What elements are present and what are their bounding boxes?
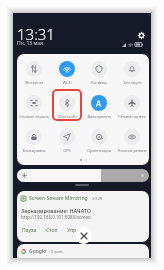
staticText: Пн, 13 мая bbox=[17, 40, 43, 47]
staticText: Пауза bbox=[22, 227, 37, 234]
button[interactable]: Режим полёта bbox=[117, 95, 147, 119]
staticText: Снимок экрана bbox=[19, 114, 49, 119]
staticText: Зеркалирование: НАЧАТО bbox=[21, 207, 92, 214]
button[interactable]: Bluetooth bbox=[52, 95, 82, 119]
staticText: 13:31 bbox=[17, 24, 55, 44]
button[interactable]: Снимок экрана bbox=[19, 95, 49, 119]
staticText: Интернет bbox=[25, 80, 44, 85]
button[interactable]: Wi-Fi bbox=[52, 61, 82, 85]
button[interactable]: Блокировка bbox=[19, 129, 49, 153]
staticText: http://192.168.0.101:8080/screen bbox=[21, 214, 91, 220]
button[interactable]: A bbox=[84, 95, 114, 119]
staticText: · 3 мин. bbox=[49, 249, 64, 254]
button[interactable]: Settings bbox=[137, 31, 146, 40]
button[interactable]: Конфид. bbox=[84, 61, 114, 85]
button[interactable]: GPS bbox=[52, 129, 82, 153]
staticText: GPS bbox=[63, 148, 71, 153]
staticText: Блокировка bbox=[22, 148, 46, 153]
button[interactable] bbox=[17, 169, 149, 182]
staticText: Google bbox=[29, 248, 47, 255]
button[interactable]: Упр. bbox=[65, 226, 80, 235]
staticText: A bbox=[96, 98, 102, 109]
staticText: Упр. bbox=[67, 227, 78, 234]
staticText: Стоп bbox=[46, 227, 58, 234]
button[interactable]: Google bbox=[17, 244, 149, 258]
staticText: · 20:28 bbox=[90, 196, 103, 201]
staticText: Без звука bbox=[123, 80, 142, 85]
button[interactable]: Стоп bbox=[44, 226, 60, 235]
button[interactable]: Интернет bbox=[19, 61, 49, 85]
button[interactable]: Пауза bbox=[20, 226, 39, 235]
button[interactable]: Без звука bbox=[117, 61, 147, 85]
button[interactable]: Ночной режим bbox=[117, 129, 147, 153]
button[interactable]: Close bbox=[75, 227, 92, 244]
staticText: Screen Stream Mirroring bbox=[29, 195, 88, 202]
button[interactable]: Ориентация bbox=[84, 129, 114, 153]
staticText: Bluetooth bbox=[58, 114, 77, 119]
button[interactable]: Screen Stream Mirroring bbox=[17, 191, 149, 242]
staticText: Автояркость bbox=[87, 114, 112, 119]
staticText: Ночной режим bbox=[117, 148, 147, 153]
staticText: Ориентация bbox=[87, 148, 111, 153]
staticText: Конфид. bbox=[91, 80, 108, 85]
staticText: Wi-Fi bbox=[62, 80, 72, 85]
staticText: Режим полёта bbox=[118, 114, 146, 119]
